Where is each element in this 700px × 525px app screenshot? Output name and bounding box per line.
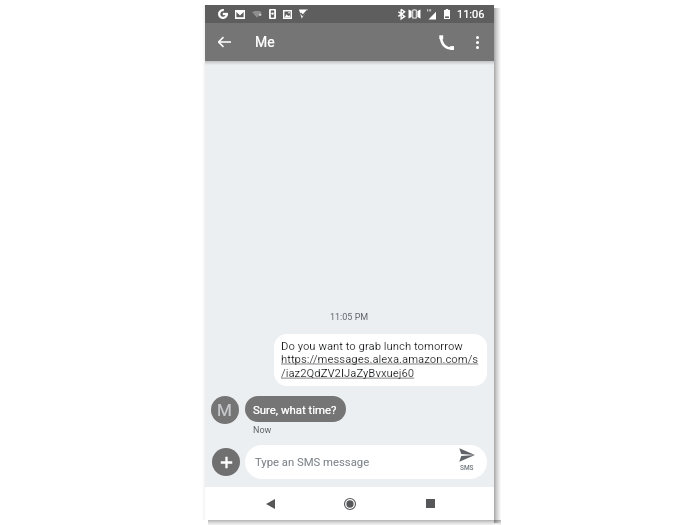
button[interactable]: More options [462,23,493,61]
button[interactable]: Home [324,487,376,520]
staticText: Me [255,34,275,50]
staticText: Sure, what time? [253,403,337,416]
button[interactable]: Type an SMS message [245,445,487,479]
staticText: 11:05 PM [330,312,369,323]
button[interactable]: Back [205,23,243,61]
button[interactable]: Do you want to grab lunch tomorrow [274,334,487,386]
staticText: M [217,400,232,420]
button[interactable]: Recent apps [404,487,456,520]
button[interactable]: Call [431,23,462,61]
staticText: 11:06 [457,8,485,21]
staticText: SMS [460,464,474,472]
button[interactable]: Attach [212,448,240,476]
staticText: Now [253,425,272,436]
button[interactable]: Back [244,487,296,520]
staticText: Type an SMS message [255,456,370,469]
button[interactable]: Send SMS [447,445,487,479]
staticText: https://messages.alexa.amazon.com/s /iaz… [281,353,479,380]
staticText: Do you want to grab lunch tomorrow [281,340,463,353]
button[interactable]: Sure, what time? [245,396,346,422]
